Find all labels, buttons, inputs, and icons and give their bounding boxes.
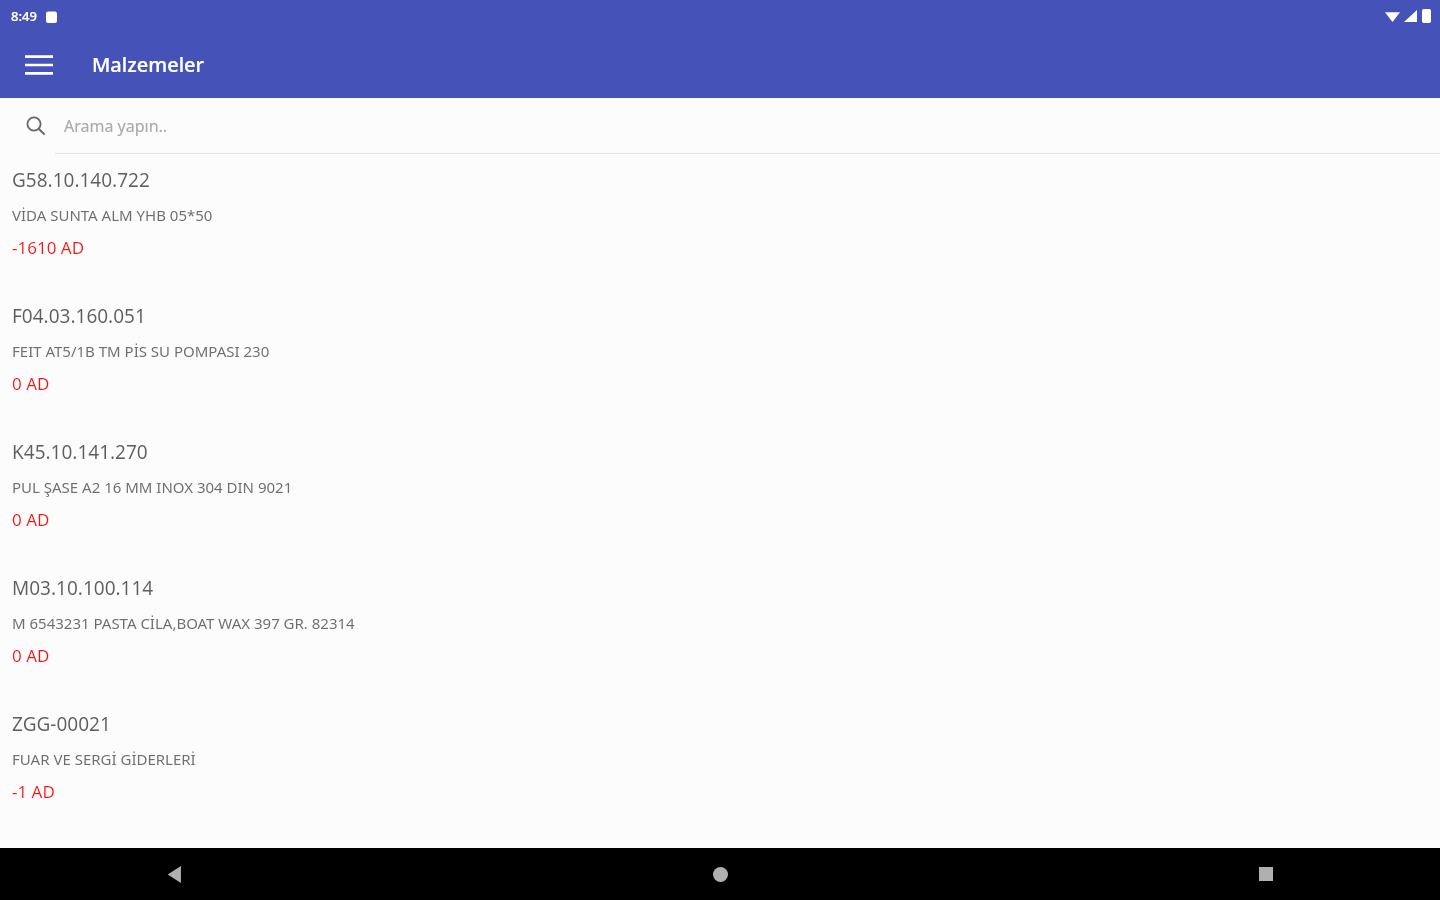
staticText: K45.10.141.270: [12, 439, 148, 465]
staticText: -1610 AD: [12, 236, 85, 259]
button[interactable]: Back: [150, 850, 198, 898]
staticText: G58.10.140.722: [12, 167, 150, 193]
staticText: 0 AD: [12, 508, 50, 531]
staticText: FEIT AT5/1B TM PİS SU POMPASI 230: [12, 341, 270, 361]
button[interactable]: M03.10.100.114: [0, 562, 1440, 698]
staticText: Malzemeler: [92, 51, 204, 78]
staticText: F04.03.160.051: [12, 303, 146, 329]
staticText: FUAR VE SERGİ GİDERLERİ: [12, 749, 196, 769]
button[interactable]: Home: [696, 850, 744, 898]
staticText: VİDA SUNTA ALM YHB 05*50: [12, 205, 213, 225]
staticText: ZGG-00021: [12, 711, 111, 737]
button[interactable]: Arama yapın..: [0, 98, 1440, 154]
staticText: -1 AD: [12, 780, 55, 803]
button[interactable]: ZGG-00021: [0, 698, 1440, 834]
staticText: M03.10.100.114: [12, 575, 154, 601]
staticText: PUL ŞASE A2 16 MM INOX 304 DIN 9021: [12, 477, 293, 497]
staticText: M 6543231 PASTA CİLA,BOAT WAX 397 GR. 82…: [12, 613, 355, 633]
staticText: Arama yapın..: [64, 115, 168, 137]
button[interactable]: K45.10.141.270: [0, 426, 1440, 562]
button[interactable]: G58.10.140.722: [0, 154, 1440, 290]
staticText: 0 AD: [12, 644, 50, 667]
button[interactable]: Recent apps: [1242, 850, 1290, 898]
staticText: 0 AD: [12, 372, 50, 395]
button[interactable]: Open navigation menu: [14, 40, 64, 90]
button[interactable]: F04.03.160.051: [0, 290, 1440, 426]
staticText: 8:49: [11, 7, 37, 25]
